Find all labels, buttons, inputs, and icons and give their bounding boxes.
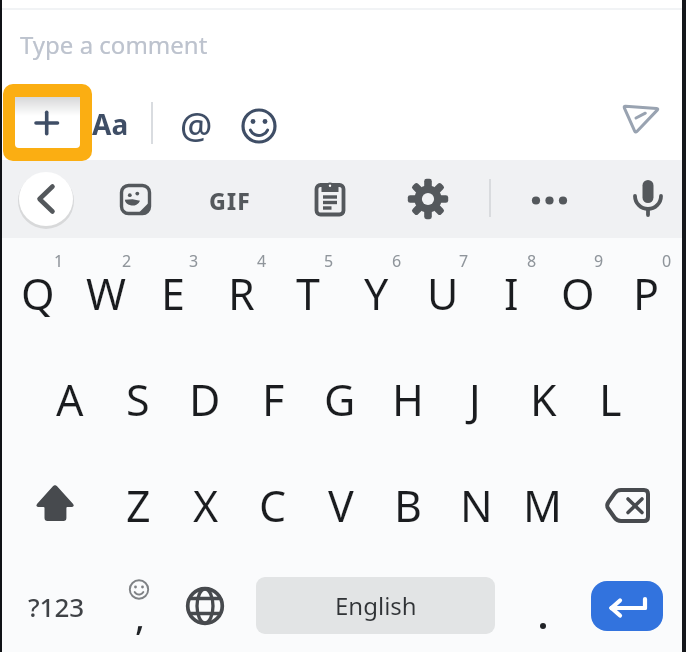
staticText: Y (364, 264, 389, 323)
staticText: U (427, 264, 459, 323)
button[interactable]: M (512, 457, 574, 553)
button[interactable]: Z (107, 457, 169, 553)
staticText: 7 (459, 250, 469, 270)
button[interactable] (626, 176, 670, 220)
staticText: 0 (662, 250, 672, 270)
button[interactable] (406, 177, 450, 221)
staticText: S (126, 370, 150, 429)
button[interactable]: C (242, 457, 304, 553)
staticText: M (523, 476, 563, 535)
button[interactable]: A (39, 351, 101, 447)
staticText: D (189, 370, 221, 429)
button[interactable]: X (175, 457, 237, 553)
button[interactable]: H (377, 351, 439, 447)
staticText: R (228, 264, 255, 323)
staticText: Aa (92, 105, 129, 143)
staticText: 6 (392, 250, 402, 270)
staticText: 5 (324, 250, 334, 270)
button[interactable]: S (107, 351, 169, 447)
staticText: Q (21, 264, 55, 323)
button[interactable]: I (480, 245, 542, 341)
button[interactable]: English (256, 577, 495, 634)
staticText: O (561, 264, 595, 323)
button[interactable] (3, 84, 92, 161)
button[interactable] (515, 565, 571, 645)
staticText: 2 (122, 250, 132, 270)
staticText: 1 (54, 250, 64, 270)
button[interactable]: Q (7, 245, 69, 341)
staticText: , (135, 592, 145, 641)
staticText: Z (126, 476, 151, 535)
staticText: K (530, 370, 557, 429)
staticText: B (394, 476, 422, 535)
staticText: G (324, 370, 356, 429)
button[interactable]: ?123 (16, 566, 96, 646)
staticText: 8 (527, 250, 537, 270)
button[interactable]: B (377, 457, 439, 553)
button[interactable]: D (174, 351, 236, 447)
button[interactable]: R (210, 245, 272, 341)
staticText: E (161, 264, 185, 323)
button[interactable] (181, 582, 229, 630)
button[interactable]: K (512, 351, 574, 447)
button[interactable] (119, 183, 153, 217)
button[interactable]: Y (345, 245, 407, 341)
staticText: J (469, 370, 481, 429)
staticText: ?123 (28, 589, 85, 624)
button[interactable]: U (412, 245, 474, 341)
button[interactable]: G (309, 351, 371, 447)
button[interactable] (591, 581, 663, 631)
button[interactable]: E (142, 245, 204, 341)
button[interactable]: O (547, 245, 609, 341)
staticText: GIF (209, 185, 251, 216)
staticText: English (335, 589, 417, 622)
button[interactable]: , (106, 560, 172, 650)
staticText: I (504, 264, 519, 323)
staticText: @ (180, 101, 213, 149)
button[interactable] (618, 97, 662, 141)
staticText: A (56, 370, 84, 429)
button[interactable] (16, 169, 76, 229)
staticText: H (392, 370, 424, 429)
button[interactable] (599, 477, 655, 533)
button[interactable] (312, 181, 348, 217)
staticText: V (328, 476, 354, 535)
button[interactable]: F (242, 351, 304, 447)
button[interactable] (237, 104, 281, 148)
staticText: 9 (594, 250, 604, 270)
button[interactable]: Type a comment (6, 20, 676, 76)
staticText: L (599, 370, 622, 429)
button[interactable]: L (579, 351, 641, 447)
button[interactable]: N (445, 457, 507, 553)
button[interactable]: GIF (204, 180, 256, 220)
button[interactable]: T (277, 245, 339, 341)
button[interactable] (31, 479, 79, 527)
staticText: F (262, 370, 285, 429)
staticText: W (86, 264, 126, 323)
button[interactable]: W (75, 245, 137, 341)
staticText: Type a comment (20, 28, 208, 61)
button[interactable]: J (444, 351, 506, 447)
staticText: 4 (257, 250, 267, 270)
button[interactable]: Aa (88, 102, 132, 146)
staticText: 3 (189, 250, 199, 270)
staticText: C (259, 476, 287, 535)
staticText: N (460, 476, 493, 535)
button[interactable]: P (615, 245, 677, 341)
button[interactable]: @ (172, 101, 220, 149)
staticText: X (193, 476, 219, 535)
button[interactable]: V (310, 457, 372, 553)
button[interactable] (527, 188, 573, 234)
staticText: P (633, 264, 660, 323)
staticText: T (296, 264, 320, 323)
